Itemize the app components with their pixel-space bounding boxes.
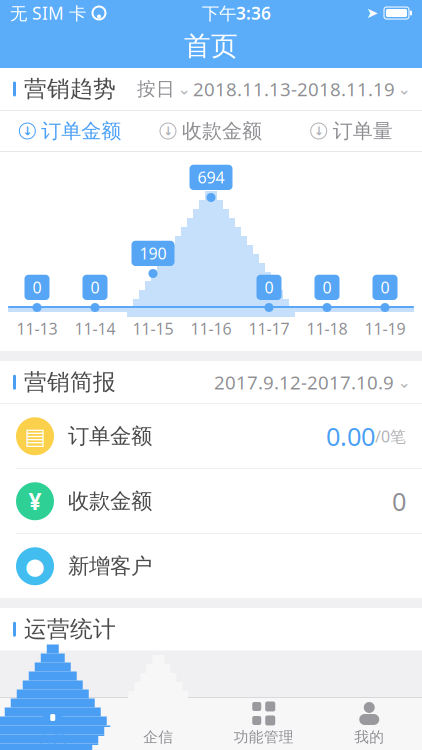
staticText: ↓ (314, 124, 324, 138)
staticText: 首页 (184, 30, 238, 62)
staticText: 11-13 (16, 318, 57, 339)
staticText: 运营统计 (24, 615, 116, 643)
staticText: 按日 (137, 77, 175, 100)
staticText: 首页 (38, 728, 68, 746)
button[interactable]: ¥ (0, 469, 422, 533)
staticText: ↓ (22, 124, 32, 138)
button[interactable]: 首页 (0, 698, 105, 750)
staticText: 0 (322, 277, 331, 298)
staticText: ▤ (24, 423, 45, 449)
staticText: 0 (32, 277, 41, 298)
staticText: 0.00 (326, 419, 375, 453)
staticText: 我的 (354, 728, 384, 746)
button[interactable]: 企信 (105, 698, 211, 750)
staticText: 0 (264, 277, 273, 298)
staticText: 2018.11.13-2018.11.19 (193, 77, 395, 101)
staticText: ⌄ (397, 80, 410, 98)
staticText: 11-19 (364, 318, 405, 339)
staticText: 营销简报 (24, 368, 116, 396)
staticText: 2017.9.12-2017.10.9 (214, 370, 394, 395)
staticText: 收款金额 (182, 119, 262, 143)
staticText: ¥ (28, 486, 41, 516)
staticText: /0笔 (375, 426, 406, 447)
button[interactable]: ↓ (281, 111, 422, 151)
staticText: 无 SIM 卡 (10, 1, 86, 24)
button[interactable]: 功能管理 (211, 698, 316, 750)
staticText: 订单金额 (41, 119, 121, 143)
staticText: 下午3:36 (202, 1, 271, 24)
staticText: 11-18 (306, 318, 347, 339)
button[interactable]: 2017.9.12-2017.10.9 (214, 370, 409, 395)
staticText: 收款金额 (68, 488, 152, 514)
staticText: 新增客户 (68, 553, 152, 579)
staticText: 企信 (143, 728, 173, 746)
staticText: 0 (380, 277, 389, 298)
staticText: 11-15 (132, 318, 173, 339)
staticText: ⌄ (397, 373, 410, 391)
button[interactable]: ● (0, 534, 422, 598)
staticText: ⌄ (177, 80, 190, 98)
staticText: 营销趋势 (24, 75, 116, 103)
button[interactable]: ▤ (0, 404, 422, 468)
staticText: 11-14 (74, 318, 115, 339)
staticText: 190 (139, 243, 166, 264)
staticText: ↓ (163, 124, 173, 138)
staticText: 订单金额 (68, 423, 152, 449)
staticText: ● (25, 553, 45, 579)
staticText: 订单量 (333, 119, 393, 143)
staticText: 0 (392, 484, 406, 518)
staticText: ➤ (366, 5, 378, 21)
button[interactable]: 我的 (316, 698, 422, 750)
staticText: 11-16 (190, 318, 231, 339)
staticText: 694 (197, 167, 224, 188)
button[interactable]: ↓ (141, 111, 281, 151)
staticText: 功能管理 (234, 728, 294, 746)
staticText: 11-17 (248, 318, 289, 339)
button[interactable]: 按日 (137, 77, 409, 101)
button[interactable]: ↓ (0, 111, 141, 151)
staticText: 0 (90, 277, 99, 298)
